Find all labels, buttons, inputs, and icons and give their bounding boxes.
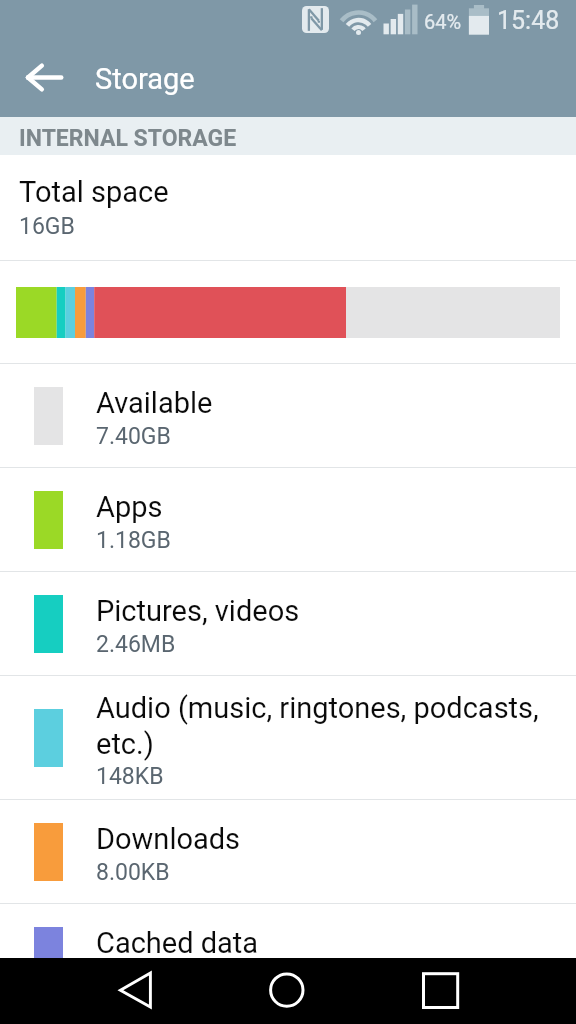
button[interactable]: Navigate up [0,38,79,117]
staticText: 7.40GB [96,423,171,450]
staticText: 148KB [96,763,164,790]
button[interactable]: Downloads [0,800,576,903]
button[interactable]: Recent apps [390,958,490,1024]
button[interactable]: Audio (music, ringtones, podcasts, etc.) [0,676,576,799]
staticText: Pictures, videos [96,594,300,628]
staticText: 1.18GB [96,527,171,554]
staticText: Audio (music, ringtones, podcasts, etc.) [96,691,546,761]
staticText: 16GB [19,213,75,240]
staticText: Cached data [96,926,259,960]
button[interactable]: Total space [0,155,576,260]
staticText: 420MB [96,963,170,990]
staticText: INTERNAL STORAGE [19,125,237,152]
staticText: 15:48 [497,6,560,35]
staticText: Downloads [96,822,241,856]
button[interactable]: Home [237,958,337,1024]
staticText: 8.00KB [96,859,170,886]
staticText: Apps [96,490,163,524]
staticText: Storage [95,62,195,96]
button[interactable]: Apps [0,468,576,571]
staticText: 2.46MB [96,631,176,658]
button[interactable]: Cached data [0,904,576,1007]
button[interactable]: Back [85,958,185,1024]
button[interactable]: Pictures, videos [0,572,576,675]
button[interactable]: Available [0,364,576,467]
staticText: Available [96,386,213,420]
staticText: 64% [424,10,462,33]
staticText: Total space [19,175,169,209]
